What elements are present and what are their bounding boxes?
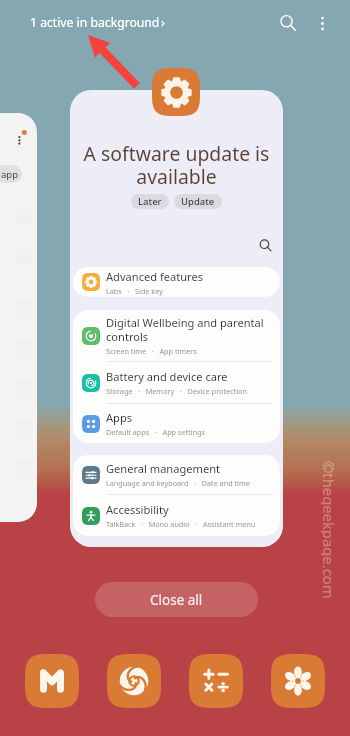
button[interactable]: Calculator [189,654,243,708]
button[interactable]: Apps [73,404,280,443]
button[interactable]: Gmail [25,654,79,708]
button[interactable]: Update [174,194,222,209]
button[interactable]: Later [131,194,169,209]
button[interactable]: More options [309,10,335,36]
staticText: Battery and device care [106,369,228,384]
button[interactable]: Digital Wellbeing and parental controls [73,310,280,361]
button[interactable]: General management [73,455,280,494]
staticText: Digital Wellbeing and parental controls [106,315,264,344]
staticText: Default apps · App settings [106,427,206,437]
staticText: Apps [106,410,133,425]
button[interactable]: Advanced features [73,267,280,297]
staticText: › [161,14,165,31]
staticText: Storage · Memory · Device protection [106,386,247,396]
button[interactable]: Accessibility [73,495,280,536]
staticText: Advanced features [106,269,204,284]
staticText: Close all [150,591,203,609]
button[interactable]: Settings app [152,68,200,116]
button[interactable]: Close all [95,582,258,617]
button[interactable]: Gallery [271,654,325,708]
staticText: app [1,168,19,181]
staticText: Labs · Side key [106,286,163,296]
staticText: Screen time · App timers [106,346,197,356]
staticText: 1 active in background [30,14,160,31]
staticText: Later [138,195,162,208]
staticText: Accessibility [106,502,169,517]
staticText: General management [106,461,221,476]
staticText: Update [181,195,215,208]
button[interactable]: Chrome [107,654,161,708]
staticText: TalkBack · Mono audio · Assistant menu [106,519,256,529]
button[interactable]: app [0,113,37,522]
staticText: A software update is available [76,140,277,190]
button[interactable]: A software update is available [70,90,283,547]
button[interactable]: Search settings [257,237,274,254]
button[interactable]: 1 active in background [30,14,165,31]
staticText: ©thegeekpage.com [321,461,339,599]
button[interactable]: Search [269,4,307,42]
staticText: Language and keyboard · Date and time [106,478,250,488]
button[interactable]: Battery and device care [73,362,280,403]
